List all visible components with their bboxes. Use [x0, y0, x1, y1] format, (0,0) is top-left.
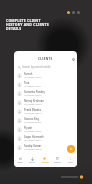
staticText: COMPLETE CLIENT HISTORY AND CLIENTS DETA…: [6, 18, 49, 31]
staticText: Piyush: [24, 126, 33, 130]
button[interactable]: Services: [38, 155, 51, 164]
staticText: Neeraj Krishnan: [24, 99, 44, 103]
button[interactable]: Tina: [14, 80, 77, 89]
staticText: +91 98765 43211: [24, 85, 42, 88]
staticText: Sagar Hiremath: [24, 135, 44, 139]
button[interactable]: Neeraj Krishnan: [14, 98, 77, 107]
button[interactable]: Search by name/mobile: [18, 64, 77, 70]
staticText: +91 98765 43213: [24, 103, 42, 106]
staticText: Sandip Kumar: [24, 144, 42, 148]
staticText: Clients: [29, 161, 35, 164]
button[interactable]: Suresh: [14, 71, 77, 80]
button[interactable]: Add client: [67, 145, 75, 153]
staticText: Gourav Sing: [24, 117, 40, 121]
staticText: +91 98765 43210: [24, 76, 42, 79]
staticText: Pratik Bhadra: [24, 108, 41, 112]
staticText: More: [68, 161, 73, 164]
staticText: +91 98765 43216: [24, 130, 42, 133]
staticText: Reports: [54, 161, 61, 164]
button[interactable]: More: [64, 155, 77, 164]
button[interactable]: Reports: [51, 155, 64, 164]
staticText: Suresh: [24, 72, 33, 76]
staticText: Tina: [24, 81, 30, 85]
button[interactable]: Notifications: [70, 56, 76, 62]
staticText: Services: [41, 161, 49, 164]
button[interactable]: Clients: [26, 155, 38, 164]
button[interactable]: Sagar Hiremath: [14, 134, 77, 143]
button[interactable]: Gourav Sing: [14, 116, 77, 125]
staticText: CLIENTS: [38, 57, 53, 61]
button[interactable]: Sumanta Pandey: [14, 89, 77, 98]
button[interactable]: Next: [61, 175, 85, 179]
staticText: Sumanta Pandey: [24, 90, 45, 94]
staticText: Home: [17, 161, 23, 164]
staticText: +91 98765 43215: [24, 121, 42, 124]
staticText: +91 98765 43217: [24, 139, 42, 142]
button[interactable]: Home: [14, 155, 26, 164]
button[interactable]: Sandip Kumar: [14, 143, 77, 152]
staticText: Search by name/mobile: [22, 65, 51, 69]
button[interactable]: Pratik Bhadra: [14, 107, 77, 116]
staticText: +91 98765 43212: [24, 94, 42, 97]
staticText: +91 98765 43218: [24, 148, 42, 151]
staticText: +91 98765 43214: [24, 112, 42, 115]
button[interactable]: Piyush: [14, 125, 77, 134]
